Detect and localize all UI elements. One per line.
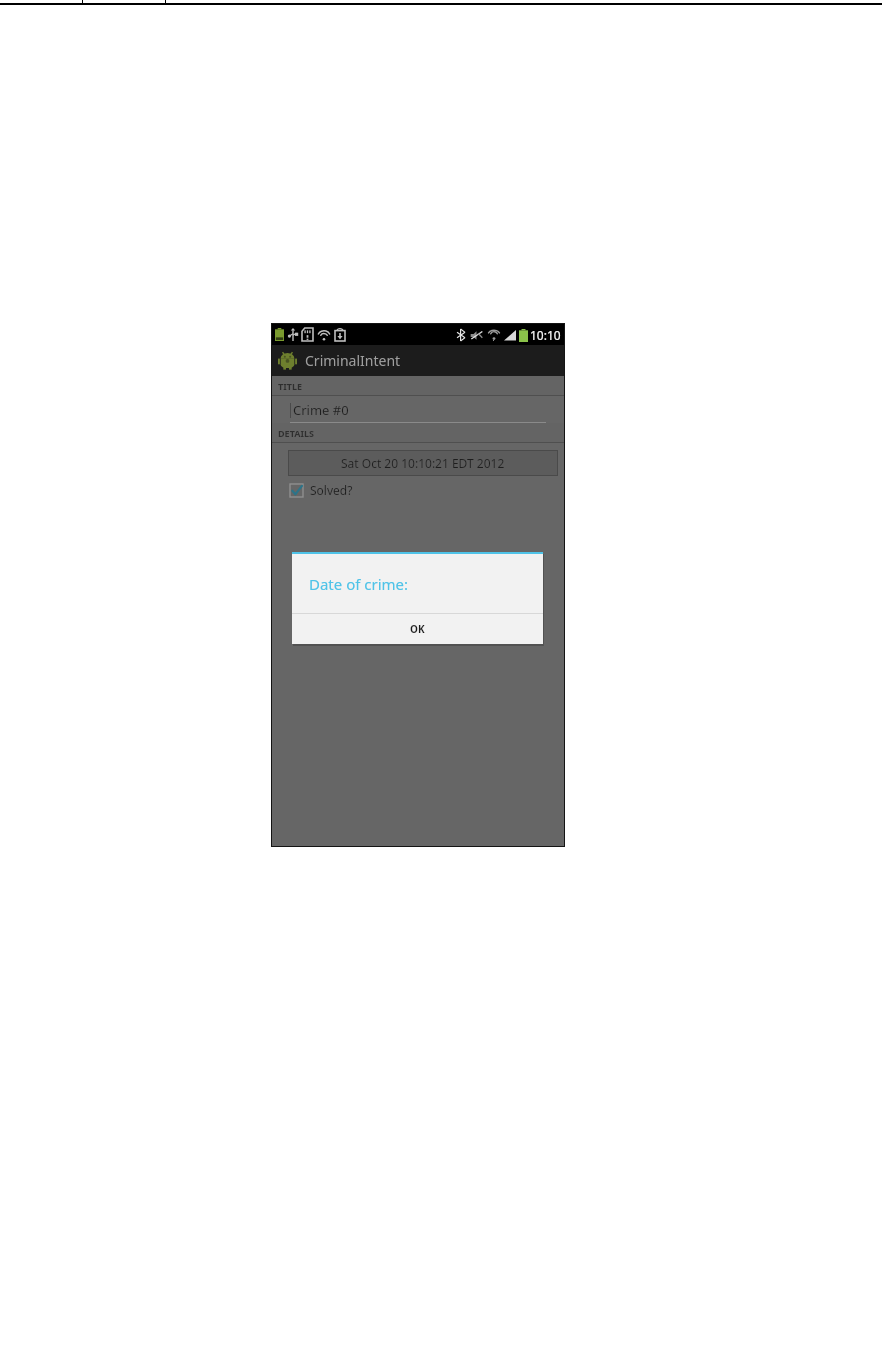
staticText: Date of crime: (309, 574, 409, 594)
staticText: CriminalIntent (305, 351, 401, 370)
staticText: Sat Oct 20 10:10:21 EDT 2012 (341, 455, 505, 471)
staticText: Crime #0 (293, 401, 349, 419)
staticText: OK (410, 622, 425, 636)
button[interactable]: Crime #0 (272, 396, 564, 423)
button[interactable]: OK (292, 614, 543, 644)
staticText: TITLE (278, 380, 302, 392)
staticText: 10:10 (530, 327, 561, 343)
staticText: DETAILS (278, 427, 314, 439)
button[interactable]: Solved? (290, 482, 564, 498)
staticText: Solved? (310, 482, 353, 498)
button[interactable]: Sat Oct 20 10:10:21 EDT 2012 (288, 450, 558, 476)
button[interactable]: CriminalIntent (272, 345, 564, 376)
